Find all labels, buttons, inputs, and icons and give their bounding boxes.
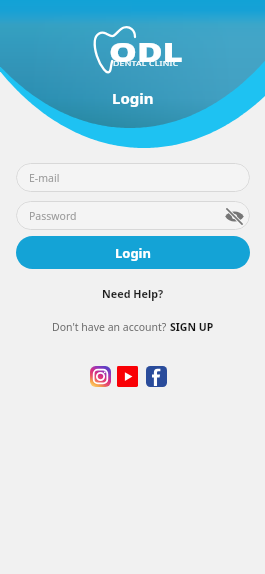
button[interactable]: Instagram	[90, 366, 111, 387]
staticText: Need Help?	[102, 286, 164, 301]
button[interactable]: Password	[16, 201, 250, 230]
staticText: Login	[115, 244, 151, 262]
button[interactable]: Login	[16, 236, 250, 269]
staticText: Password	[29, 209, 77, 223]
staticText: Don't have an account?	[52, 320, 170, 334]
button[interactable]: E-mail	[16, 163, 250, 192]
staticText: Login	[112, 88, 154, 108]
staticText: SIGN UP	[170, 320, 214, 334]
button[interactable]: YouTube	[117, 366, 138, 387]
button[interactable]: SIGN UP	[170, 320, 214, 334]
button[interactable]: Facebook	[146, 366, 167, 387]
staticText: DENTAL CLINIC	[113, 58, 179, 68]
button[interactable]: Show password	[223, 205, 245, 227]
staticText: ODL	[109, 33, 183, 69]
button[interactable]: Need Help?	[100, 284, 166, 303]
staticText: E-mail	[29, 171, 60, 185]
